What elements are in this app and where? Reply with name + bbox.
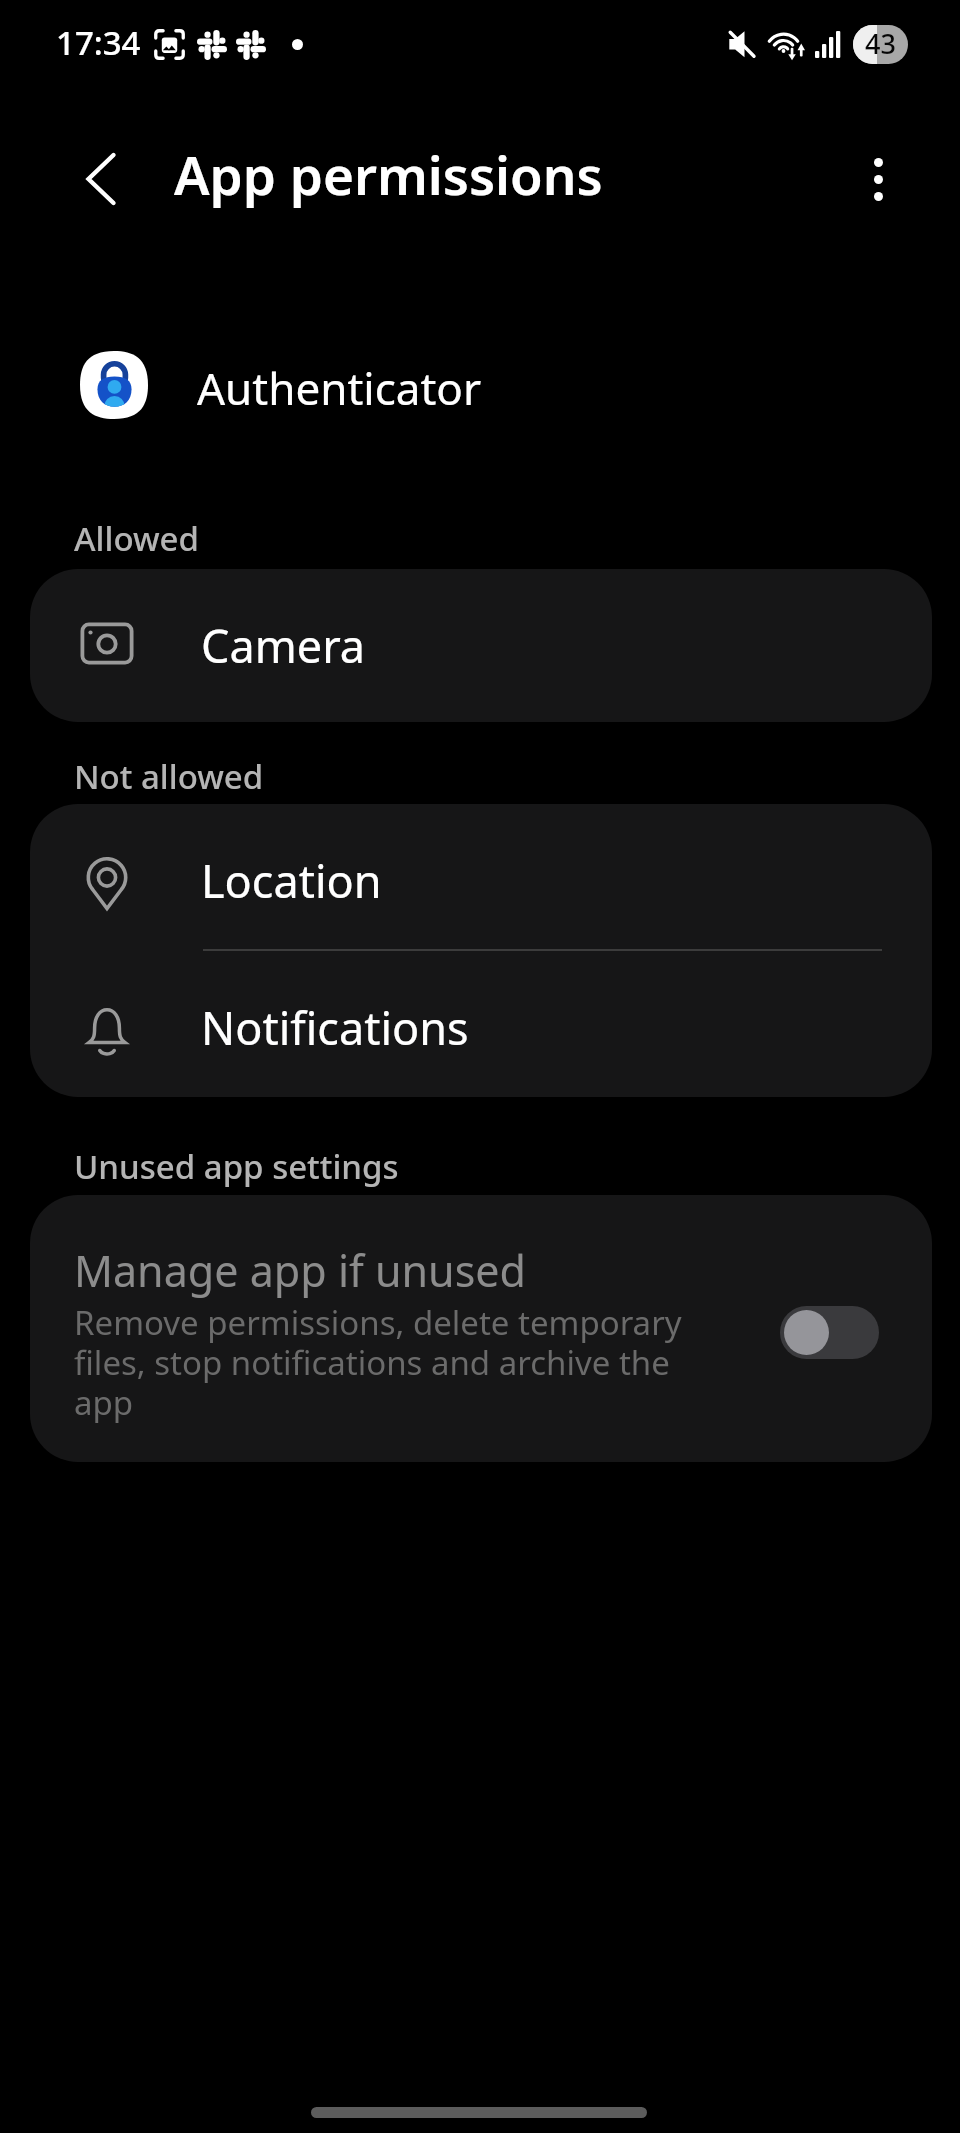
button[interactable]: More options (845, 146, 911, 212)
staticText: Unused app settings (74, 1144, 399, 1189)
staticText: Allowed (74, 516, 199, 561)
staticText: Authenticator (197, 358, 482, 418)
button[interactable]: Navigate up (68, 146, 134, 212)
button[interactable]: Manage app if unused (30, 1195, 932, 1462)
staticText: Notifications (201, 997, 469, 1058)
staticText: App permissions (174, 138, 603, 210)
button[interactable]: Notifications (30, 951, 932, 1097)
button[interactable]: Camera (30, 569, 932, 722)
button[interactable]: Manage app if unused (780, 1306, 879, 1359)
staticText: 17:34 (56, 20, 141, 65)
staticText: Location (201, 850, 382, 911)
staticText: Remove permissions, delete temporary fil… (74, 1300, 692, 1425)
button[interactable]: Authenticator (80, 351, 482, 419)
staticText: Manage app if unused (74, 1241, 526, 1300)
button[interactable]: Location (30, 804, 932, 949)
staticText: Camera (201, 615, 366, 676)
staticText: Not allowed (74, 754, 264, 799)
staticText: 43 (865, 25, 896, 62)
